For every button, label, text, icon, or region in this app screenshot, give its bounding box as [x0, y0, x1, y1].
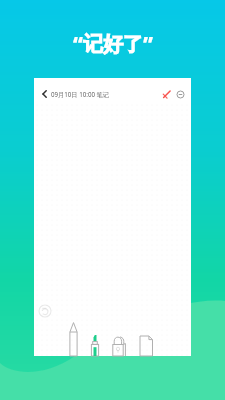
staticText: “记好了” — [73, 30, 153, 57]
button[interactable]: Undo — [37, 303, 53, 319]
staticText: 09月10日 10:00 笔记 — [51, 90, 109, 98]
button[interactable]: Back — [38, 88, 50, 100]
button[interactable]: Eraser — [112, 335, 126, 356]
button[interactable]: Highlighter — [89, 335, 101, 356]
button[interactable]: Edit note — [160, 88, 173, 101]
button[interactable]: Pencil — [69, 322, 78, 356]
button[interactable]: More options — [174, 88, 187, 101]
button[interactable]: New page — [139, 335, 154, 356]
